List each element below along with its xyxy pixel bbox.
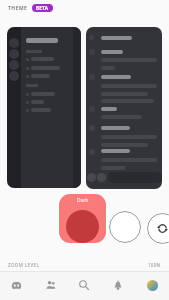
staticText: 100%	[148, 262, 161, 268]
button[interactable]: Profile	[135, 274, 169, 296]
staticText: THEME	[8, 5, 28, 12]
staticText: Dark	[77, 197, 89, 204]
button[interactable]: Dark	[59, 194, 106, 243]
button[interactable]: Light theme	[109, 211, 141, 243]
button[interactable]: Servers	[0, 274, 33, 296]
staticText: BETA	[36, 5, 49, 11]
button[interactable]: Auto theme	[147, 213, 169, 244]
button[interactable]: Search	[67, 274, 101, 296]
staticText: ZOOM LEVEL	[8, 262, 40, 268]
button[interactable]: Friends	[33, 274, 67, 296]
button[interactable]: Notifications	[101, 274, 135, 296]
